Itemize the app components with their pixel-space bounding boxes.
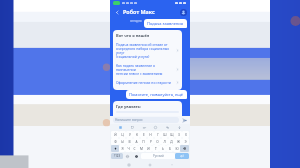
button[interactable]: Русский bbox=[141, 153, 175, 159]
staticText: Подача заявления об отказе от очередного… bbox=[116, 42, 174, 59]
button[interactable]: Т bbox=[152, 145, 159, 152]
staticText: Л bbox=[163, 140, 166, 144]
staticText: Д bbox=[170, 140, 173, 144]
staticText: Й bbox=[114, 133, 117, 137]
button[interactable]: Send bbox=[181, 117, 187, 123]
staticText: Т bbox=[155, 147, 157, 151]
staticText: ?123 bbox=[114, 154, 121, 158]
button[interactable]: Помогите, пожалуйста, ещё bbox=[126, 90, 187, 99]
button[interactable]: О bbox=[154, 138, 161, 145]
button[interactable]: Х bbox=[182, 131, 189, 138]
staticText: Я bbox=[121, 147, 124, 151]
staticText: Э bbox=[184, 140, 187, 144]
staticText: Ш bbox=[163, 133, 167, 137]
button[interactable]: Ч bbox=[125, 145, 131, 152]
staticText: Где указать: bbox=[116, 104, 141, 109]
button[interactable]: Recents bbox=[126, 162, 132, 168]
button[interactable]: Tool 3 bbox=[153, 125, 158, 130]
button[interactable]: Напишите вопрос bbox=[113, 117, 179, 123]
button[interactable]: ?123 bbox=[111, 153, 123, 159]
button[interactable]: Б bbox=[166, 145, 173, 152]
button[interactable]: Ь bbox=[159, 145, 166, 152]
staticText: У bbox=[129, 133, 131, 137]
button[interactable]: З bbox=[175, 131, 182, 138]
button[interactable]: Emoji bbox=[132, 153, 141, 159]
button[interactable]: Оформление пенсии по старости bbox=[116, 78, 179, 87]
button[interactable]: В bbox=[126, 138, 133, 145]
button[interactable]: Р bbox=[147, 138, 154, 145]
button[interactable]: Как подать заявление о назначении пенсии… bbox=[116, 61, 179, 78]
staticText: Щ bbox=[170, 133, 174, 137]
staticText: О bbox=[156, 140, 159, 144]
button[interactable]: Ш bbox=[161, 131, 168, 138]
staticText: Ю bbox=[175, 147, 179, 151]
staticText: Ы bbox=[121, 140, 124, 144]
staticText: Р bbox=[150, 140, 152, 144]
button[interactable]: Profile bbox=[179, 8, 187, 16]
button[interactable]: К bbox=[133, 131, 140, 138]
staticText: Б bbox=[169, 147, 171, 151]
staticText: К bbox=[136, 133, 138, 137]
staticText: С bbox=[133, 147, 136, 151]
button[interactable]: Home bbox=[147, 162, 153, 168]
button[interactable]: Н bbox=[147, 131, 154, 138]
staticText: З bbox=[178, 133, 180, 137]
staticText: А bbox=[135, 140, 138, 144]
button[interactable]: Э bbox=[182, 138, 189, 145]
staticText: Подача заявления bbox=[147, 21, 184, 26]
button[interactable]: Ф bbox=[111, 138, 119, 145]
staticText: Г bbox=[157, 133, 159, 137]
button[interactable]: Подача заявления об отказе от очередного… bbox=[116, 40, 179, 61]
button[interactable]: Backspace bbox=[180, 145, 189, 152]
button[interactable]: Г bbox=[154, 131, 161, 138]
button[interactable]: Й bbox=[111, 131, 119, 138]
button[interactable]: Е bbox=[140, 131, 147, 138]
staticText: Вот что я нашёл bbox=[116, 33, 150, 38]
staticText: И bbox=[147, 147, 150, 151]
staticText: П bbox=[142, 140, 145, 144]
button[interactable]: П bbox=[140, 138, 147, 145]
staticText: В bbox=[128, 140, 131, 144]
staticText: Ц bbox=[121, 133, 124, 137]
staticText: Н bbox=[149, 133, 152, 137]
button[interactable]: М bbox=[138, 145, 145, 152]
button[interactable]: Ж bbox=[175, 138, 182, 145]
button[interactable]: Ц bbox=[119, 131, 126, 138]
button[interactable]: Tool 2 bbox=[142, 125, 147, 130]
button[interactable]: Подача заявления bbox=[144, 19, 187, 28]
staticText: Ь bbox=[162, 147, 164, 151]
staticText: Помогите, пожалуйста, ещё bbox=[129, 92, 184, 97]
button[interactable]: Щ bbox=[168, 131, 175, 138]
staticText: сегодня bbox=[130, 19, 142, 23]
staticText: Как подать заявление о назначении пенсии… bbox=[116, 63, 174, 76]
button[interactable]: У bbox=[126, 131, 133, 138]
staticText: Робот Макс bbox=[123, 8, 155, 15]
button[interactable]: А bbox=[133, 138, 140, 145]
staticText: Е bbox=[143, 133, 145, 137]
button[interactable]: Tool 0 bbox=[118, 125, 123, 130]
button[interactable]: Tool 5 bbox=[177, 125, 182, 130]
staticText: Ж bbox=[177, 140, 180, 144]
button[interactable]: Back bbox=[169, 162, 175, 168]
button[interactable]: Я bbox=[119, 145, 125, 152]
staticText: Русский bbox=[153, 154, 164, 158]
button[interactable]: Back bbox=[113, 8, 121, 16]
staticText: Ф bbox=[114, 140, 117, 144]
staticText: Ч bbox=[127, 147, 130, 151]
button[interactable]: Shift bbox=[111, 145, 119, 152]
staticText: Напишите вопрос bbox=[115, 118, 143, 122]
button[interactable]: Д bbox=[168, 138, 175, 145]
button[interactable]: Enter bbox=[175, 153, 189, 159]
button[interactable]: С bbox=[131, 145, 138, 152]
staticText: Х bbox=[185, 133, 187, 137]
button[interactable]: Ы bbox=[119, 138, 126, 145]
button[interactable]: И bbox=[145, 145, 152, 152]
staticText: Оформление пенсии по старости bbox=[116, 80, 174, 85]
staticText: М bbox=[140, 147, 143, 151]
button[interactable]: Ю bbox=[173, 145, 180, 152]
button[interactable]: Tool 1 bbox=[130, 125, 135, 130]
button[interactable]: Л bbox=[161, 138, 168, 145]
button[interactable]: Language bbox=[123, 153, 132, 159]
button[interactable]: Tool 4 bbox=[165, 125, 170, 130]
